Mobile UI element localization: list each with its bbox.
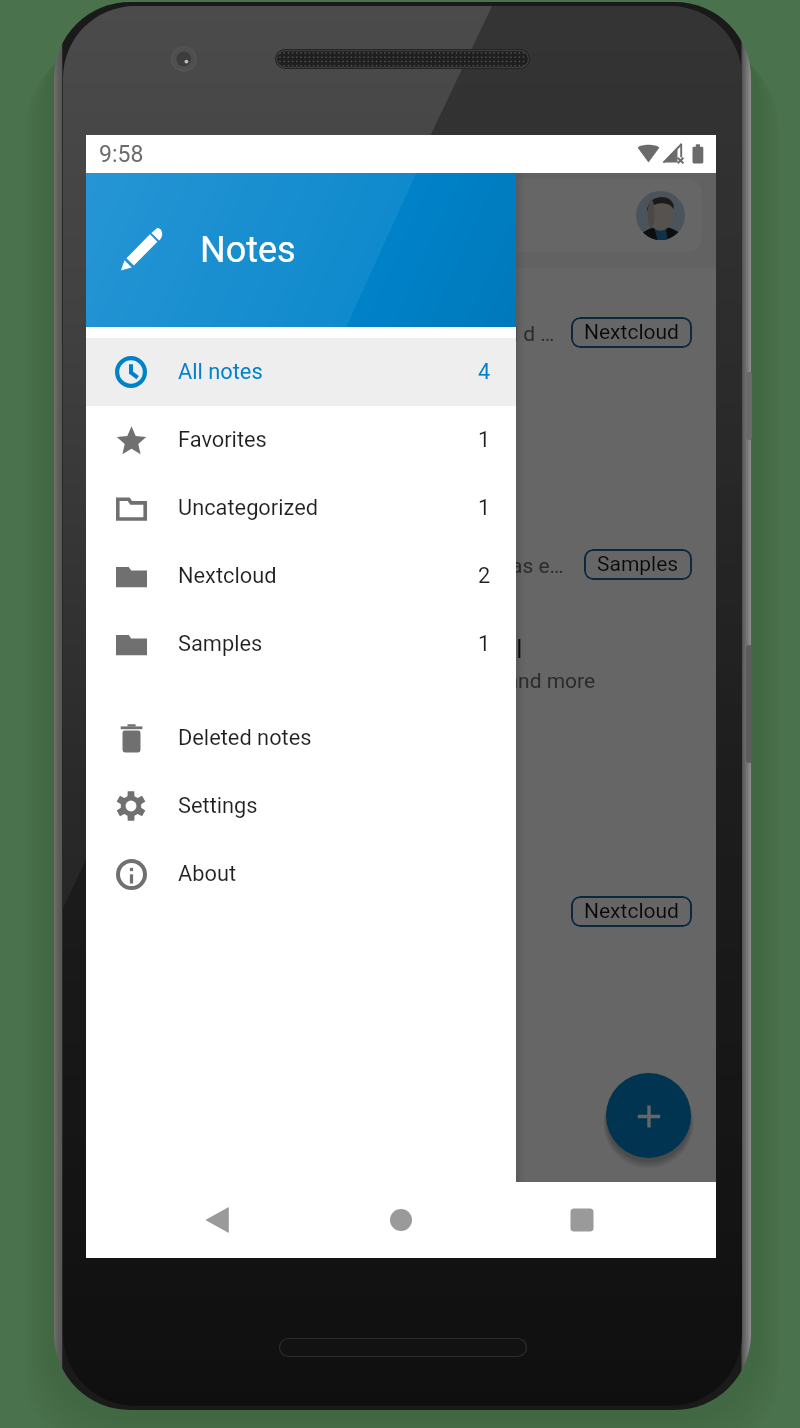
staticText: 2 xyxy=(478,563,491,589)
button[interactable]: Welcome to Nextcloud Notes! xyxy=(86,268,716,384)
staticText: 4 xyxy=(478,359,491,385)
button[interactable]: Ideas xyxy=(86,1078,716,1194)
button[interactable]: Notes xyxy=(86,173,516,327)
staticText: Samples xyxy=(597,552,679,577)
button[interactable]: Samples xyxy=(86,610,516,678)
button[interactable]: Nextcloud xyxy=(86,542,516,610)
button[interactable]: Todo list xyxy=(86,731,716,847)
staticText: About xyxy=(178,861,237,887)
staticText: 1 xyxy=(478,495,491,521)
button[interactable]: All notes xyxy=(86,338,516,406)
staticText: Uncategorized xyxy=(178,495,318,521)
staticText: Nextcloud Notes is an open source app an… xyxy=(112,322,555,347)
button[interactable]: Recent apps xyxy=(546,1182,618,1258)
staticText: Nextcloud xyxy=(584,320,679,345)
staticText: Nextcloud xyxy=(178,563,277,589)
staticText: Lists with checkboxes xyxy=(112,785,318,810)
staticText: Sample note xyxy=(112,520,252,549)
staticText: Markdown cheat sheet with a tutorial xyxy=(112,635,523,664)
staticText: Settings xyxy=(178,793,258,819)
staticText: Samples xyxy=(178,631,263,657)
staticText: Shopping list xyxy=(112,867,257,896)
staticText: Headlines, links, lists, code blocks, qu… xyxy=(112,669,596,694)
button[interactable]: Samples xyxy=(584,549,692,580)
button[interactable]: Back xyxy=(181,1182,253,1258)
button[interactable]: Sample note xyxy=(86,500,716,616)
staticText: 1 xyxy=(478,631,491,657)
staticText: All notes xyxy=(178,359,263,385)
button[interactable]: Markdown cheat sheet with a tutorial xyxy=(86,615,716,731)
staticText: Search in All notes … xyxy=(126,203,328,229)
staticText: README xyxy=(112,404,211,433)
button[interactable]: About xyxy=(86,840,516,908)
button[interactable]: Create note xyxy=(606,1073,691,1158)
button[interactable]: Nextcloud xyxy=(571,317,692,348)
button[interactable]: Nextcloud xyxy=(571,896,692,927)
staticText: Nextcloud xyxy=(584,899,679,924)
button[interactable]: README xyxy=(86,384,716,500)
button[interactable]: Settings xyxy=(86,772,516,840)
staticText: Everything you need to know xyxy=(112,438,378,463)
button[interactable]: Recipes xyxy=(86,962,716,1078)
button[interactable]: Home xyxy=(365,1182,437,1258)
button[interactable]: Shopping list xyxy=(86,847,716,963)
staticText: Deleted notes xyxy=(178,725,312,751)
staticText: Notes xyxy=(200,229,296,271)
button[interactable]: Account xyxy=(636,191,685,240)
staticText: Favorites xyxy=(178,427,267,453)
staticText: 1 xyxy=(478,427,491,453)
staticText: Todo list xyxy=(112,751,208,780)
button[interactable]: Deleted notes xyxy=(86,704,516,772)
staticText: 9:58 xyxy=(99,141,144,168)
staticText: This note was created for you as a sampl… xyxy=(112,554,564,579)
staticText: Welcome to Nextcloud Notes! xyxy=(112,288,443,317)
button[interactable]: Favorites xyxy=(86,406,516,474)
button[interactable]: Search in All notes … xyxy=(100,179,702,252)
button[interactable]: Uncategorized xyxy=(86,474,516,542)
